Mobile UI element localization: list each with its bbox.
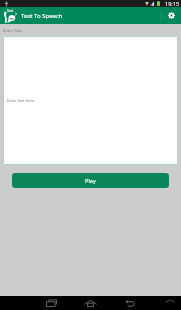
staticText: Play (85, 177, 96, 185)
button[interactable]: Home (77, 296, 103, 310)
button[interactable]: Enter text here (3, 36, 178, 165)
button[interactable]: Show menu (163, 296, 177, 310)
staticText: Text To Speech (21, 12, 63, 20)
button[interactable]: Recents (38, 296, 64, 310)
button[interactable]: Settings (162, 7, 181, 24)
button[interactable]: Play (12, 173, 169, 188)
staticText: 19:15 (165, 0, 180, 7)
button[interactable]: Back (117, 296, 143, 310)
staticText: Enter Text (3, 28, 22, 33)
staticText: Text (7, 9, 14, 13)
staticText: Enter text here (7, 98, 35, 103)
